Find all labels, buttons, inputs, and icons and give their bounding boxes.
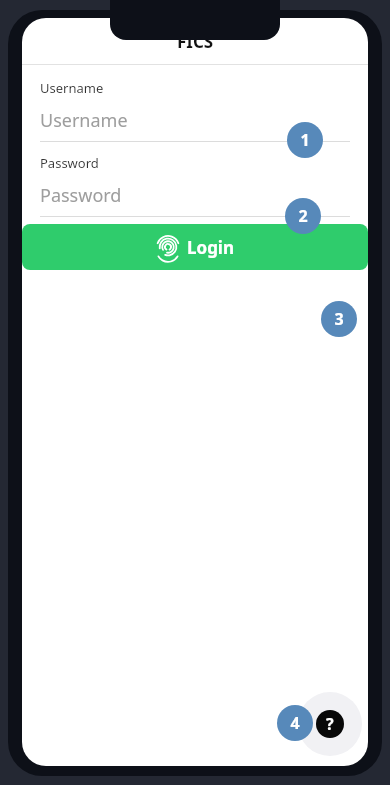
staticText: FICS	[177, 30, 214, 53]
button[interactable]: Username	[22, 107, 368, 133]
staticText: Username	[40, 108, 128, 133]
staticText: Password	[40, 154, 99, 172]
staticText: Password	[40, 183, 122, 208]
staticText: 2	[298, 205, 308, 227]
staticText: Login	[187, 236, 235, 259]
button[interactable]: Password	[22, 182, 368, 208]
staticText: 1	[300, 129, 310, 151]
staticText: ?	[326, 713, 334, 735]
button[interactable]: Help	[298, 692, 362, 756]
staticText: 4	[290, 712, 300, 734]
button[interactable]: Login	[22, 224, 368, 270]
staticText: Username	[40, 79, 104, 97]
staticText: 3	[334, 308, 344, 330]
